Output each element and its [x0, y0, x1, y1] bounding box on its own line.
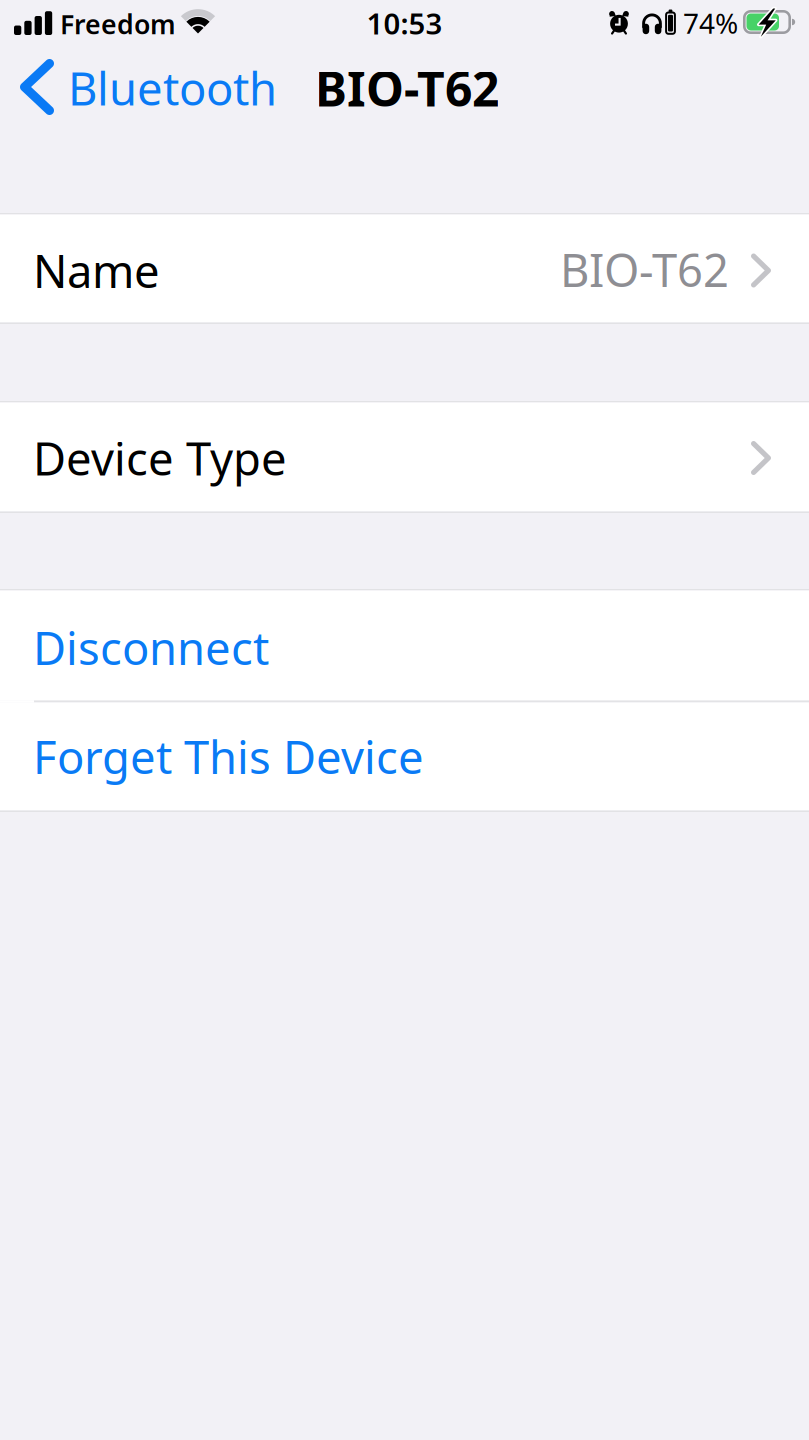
button[interactable]: Forget This Device: [0, 702, 809, 810]
staticText: Bluetooth: [68, 58, 277, 118]
staticText: BIO-T62: [560, 239, 729, 300]
button[interactable]: Disconnect: [0, 590, 809, 700]
button[interactable]: Name: [0, 214, 809, 322]
staticText: 10:53: [366, 3, 442, 42]
staticText: Disconnect: [33, 617, 269, 678]
staticText: Name: [33, 240, 160, 301]
staticText: Freedom: [60, 6, 176, 42]
staticText: BIO-T62: [315, 56, 499, 120]
staticText: 74%: [683, 4, 738, 42]
staticText: Device Type: [33, 428, 287, 488]
button[interactable]: Bluetooth: [20, 57, 277, 117]
button[interactable]: Device Type: [0, 402, 809, 511]
staticText: Forget This Device: [33, 726, 424, 787]
